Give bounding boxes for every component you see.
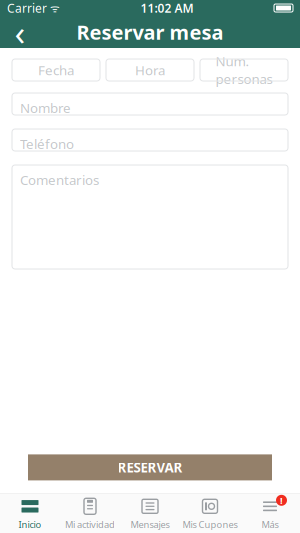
staticText: ! bbox=[280, 494, 283, 506]
button[interactable]: Nombre bbox=[12, 93, 288, 115]
button[interactable]: RESERVAR bbox=[28, 454, 272, 480]
button[interactable]: ! bbox=[240, 492, 300, 533]
staticText: Mensajes bbox=[130, 518, 169, 531]
button[interactable]: Comentarios bbox=[12, 165, 288, 269]
staticText: 11:02 AM bbox=[140, 0, 193, 16]
staticText: Comentarios bbox=[20, 171, 99, 189]
staticText: Inicio bbox=[18, 518, 41, 531]
staticText: Fecha bbox=[38, 61, 74, 79]
staticText: Carrier bbox=[7, 0, 47, 16]
button[interactable]: Inicio bbox=[0, 492, 60, 533]
staticText: ᯤ bbox=[47, 1, 60, 15]
button[interactable]: Hora bbox=[106, 59, 194, 81]
staticText: Hora bbox=[135, 61, 165, 79]
staticText: Mis Cupones bbox=[182, 518, 237, 531]
button[interactable]: Fecha bbox=[12, 59, 100, 81]
staticText: Reservar mesa bbox=[76, 19, 223, 45]
staticText: Más bbox=[261, 518, 278, 531]
button[interactable]: Mensajes bbox=[120, 492, 180, 533]
staticText: Mi actividad bbox=[65, 518, 115, 531]
staticText: Nombre bbox=[20, 99, 71, 117]
staticText: Teléfono bbox=[20, 135, 74, 153]
button[interactable]: Back bbox=[0, 16, 40, 48]
button[interactable]: Num. personas bbox=[200, 59, 288, 81]
staticText: ‹ bbox=[14, 9, 25, 55]
button[interactable]: Mis Cupones bbox=[180, 492, 240, 533]
staticText: Num. personas bbox=[215, 52, 272, 88]
button[interactable]: Teléfono bbox=[12, 129, 288, 151]
staticText: RESERVAR bbox=[117, 458, 182, 476]
button[interactable]: Mi actividad bbox=[60, 492, 120, 533]
